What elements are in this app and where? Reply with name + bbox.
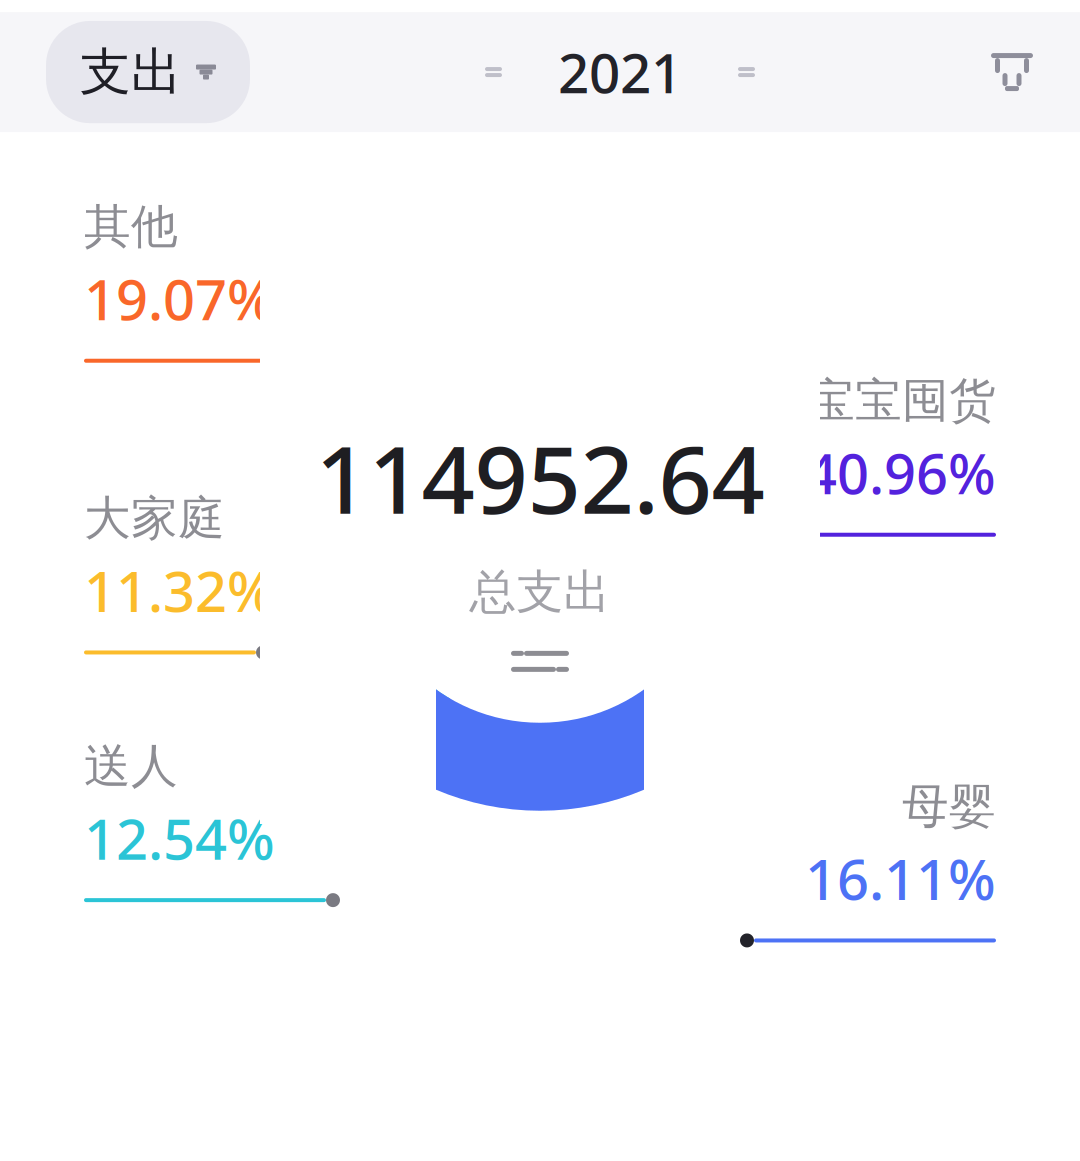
button[interactable]: 支出 [46, 21, 250, 123]
staticText: 支出 [80, 41, 182, 103]
button[interactable]: 下一年 [730, 50, 756, 94]
staticText: 12.54% [84, 801, 275, 875]
staticText: 114952.64 [315, 416, 764, 539]
staticText: 其他 [84, 198, 178, 255]
staticText: 2021 [558, 36, 682, 108]
staticText: 11.32% [84, 553, 275, 627]
button[interactable]: 切换收支 [511, 651, 569, 672]
staticText: 40.96% [805, 435, 996, 510]
button[interactable]: 上一年 [484, 50, 510, 94]
staticText: 总支出 [469, 564, 610, 621]
staticText: 19.07% [84, 261, 275, 336]
staticText: 送人 [84, 737, 178, 795]
staticText: 大家庭 [84, 490, 225, 547]
button[interactable]: 筛选 [990, 49, 1034, 95]
staticText: 16.11% [805, 841, 996, 915]
staticText: 宝宝囤货 [808, 372, 996, 429]
staticText: 母婴 [902, 778, 996, 835]
